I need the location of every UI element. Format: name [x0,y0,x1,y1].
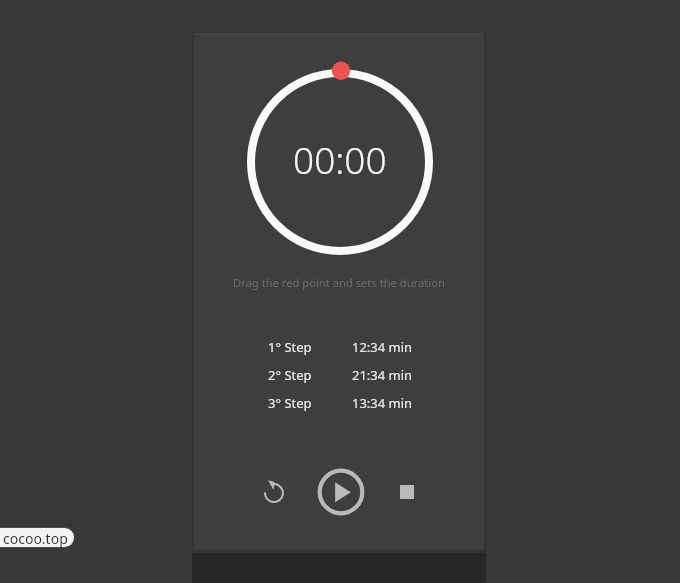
staticText: 13:34 min [352,394,413,412]
button[interactable]: Duration dial, drag the red point [239,59,439,263]
staticText: 1° Step [268,338,312,356]
button[interactable]: 3° Step [194,389,484,417]
staticText: Drag the red point and sets the duration [233,275,445,290]
button[interactable]: 1° Step [194,333,484,361]
staticText: 00:00 [293,134,387,184]
staticText: 12:34 min [352,338,413,356]
button[interactable]: Stop [387,472,427,512]
button[interactable]: Play [316,467,366,517]
button[interactable]: Reset [254,472,294,512]
staticText: 2° Step [268,366,312,384]
staticText: cocoo.top [3,529,68,548]
button[interactable]: 2° Step [194,361,484,389]
staticText: 21:34 min [352,366,413,384]
staticText: 3° Step [268,394,312,412]
